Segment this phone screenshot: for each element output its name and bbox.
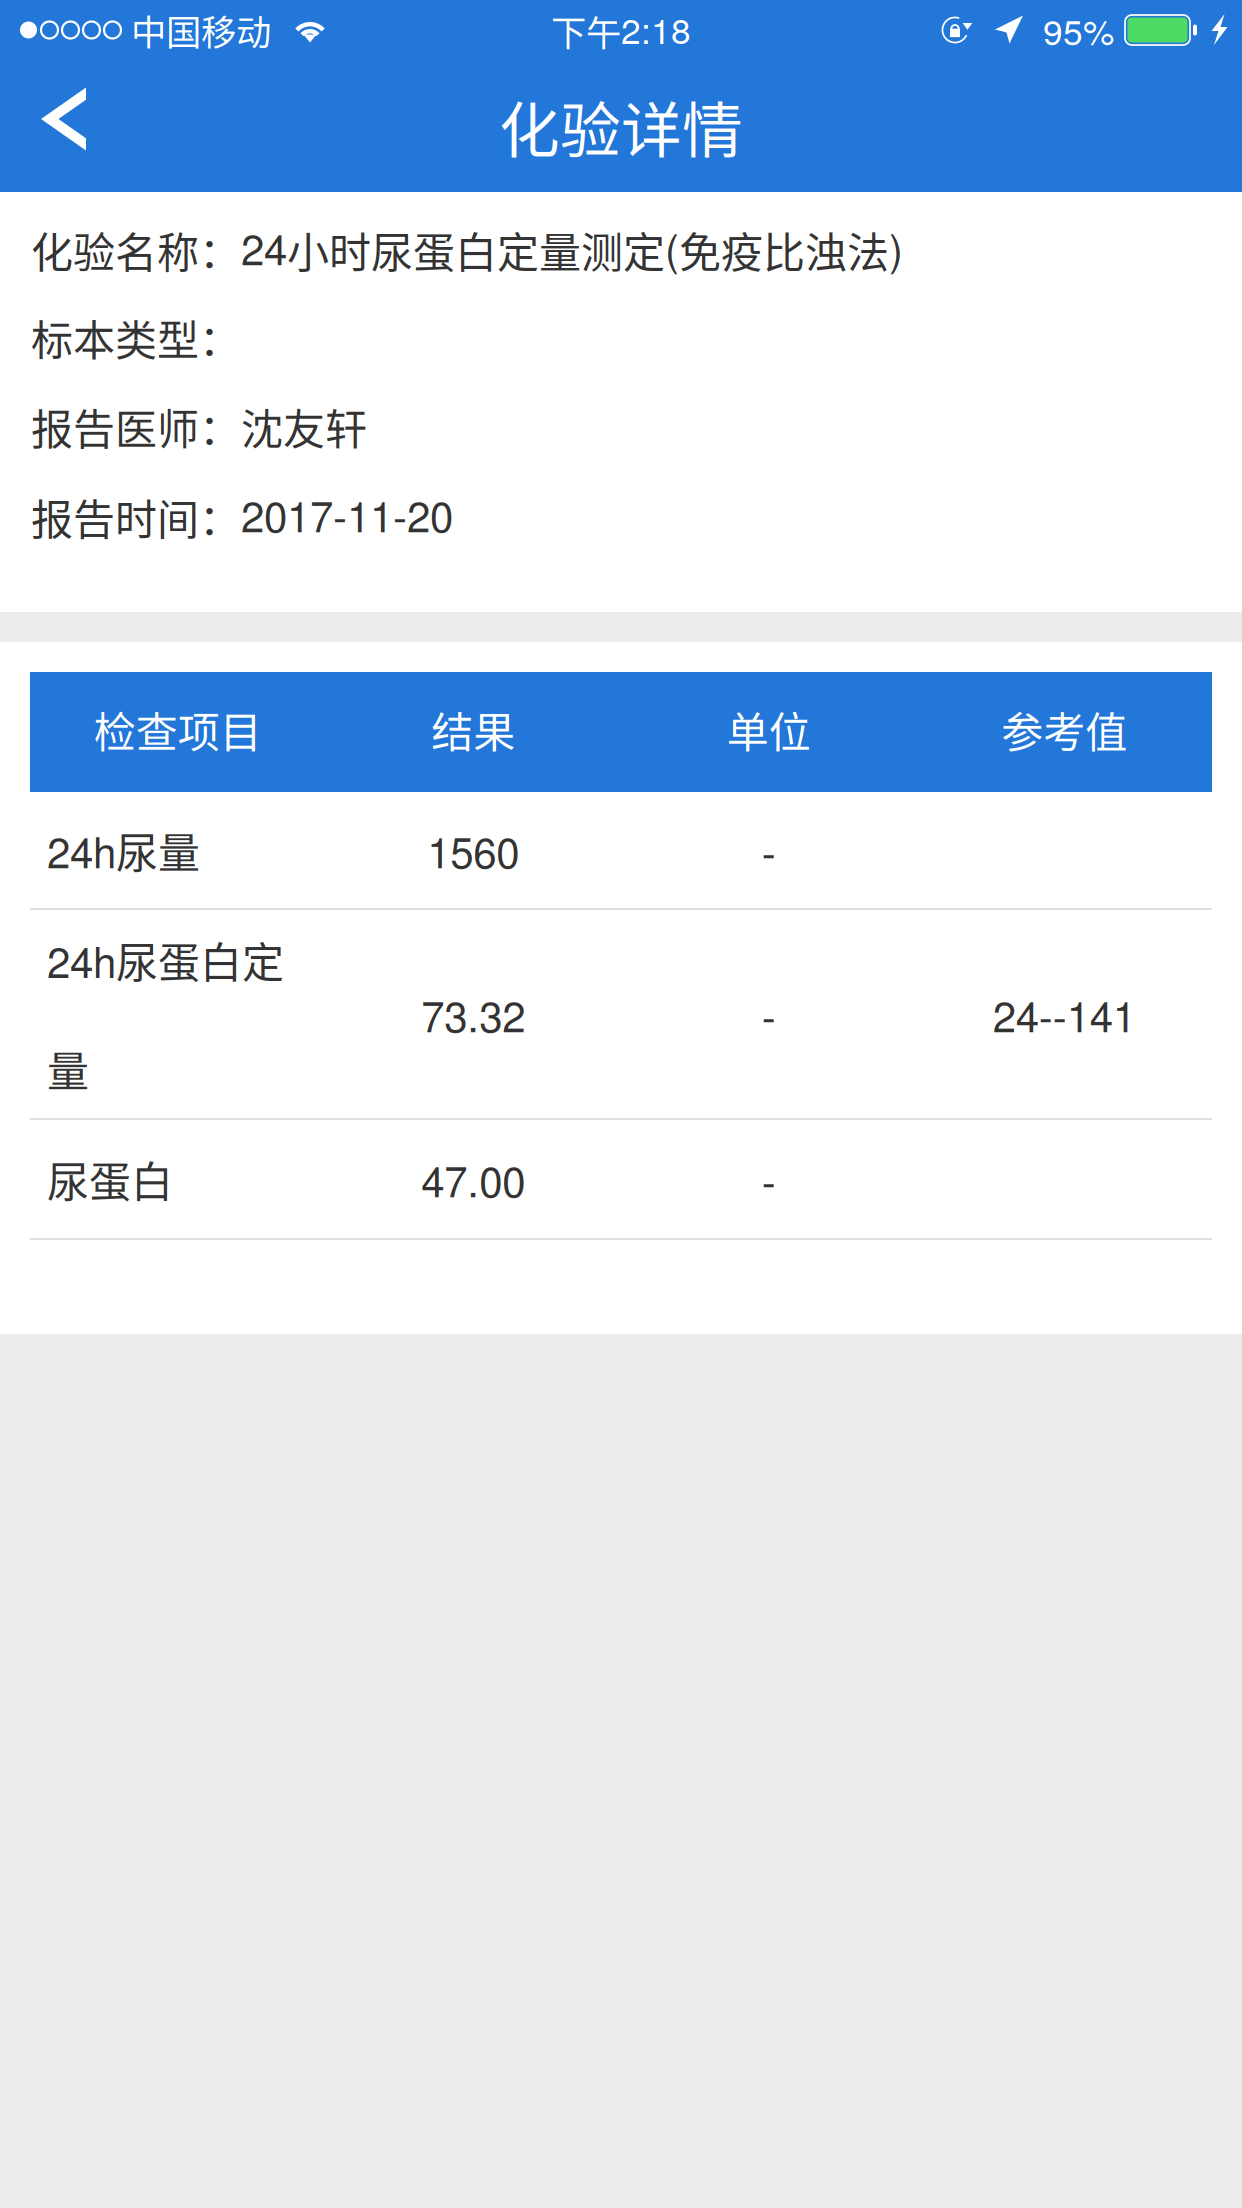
- staticText: -: [762, 984, 776, 1044]
- staticText: 73.32: [421, 984, 525, 1044]
- staticText: -: [762, 1149, 776, 1209]
- staticText: 标本类型：: [31, 307, 241, 368]
- staticText: 单位: [727, 699, 811, 760]
- staticText: 24h尿蛋白定量: [47, 929, 284, 1099]
- staticText: 化验名称：24小时尿蛋白定量测定(免疫比浊法): [31, 217, 903, 280]
- staticText: 95%: [1043, 5, 1114, 55]
- staticText: 下午2:18: [551, 3, 691, 57]
- staticText: 24--141: [993, 984, 1136, 1044]
- staticText: 24h尿量: [47, 820, 200, 880]
- staticText: 报告时间：2017-11-20: [31, 484, 453, 547]
- staticText: 尿蛋白: [47, 1149, 173, 1209]
- staticText: 中国移动: [131, 4, 271, 56]
- staticText: 结果: [431, 699, 515, 760]
- button[interactable]: 返回: [0, 60, 127, 192]
- staticText: 检查项目: [94, 699, 262, 760]
- staticText: 参考值: [1001, 699, 1127, 760]
- staticText: -: [762, 820, 776, 880]
- staticText: 1560: [427, 820, 519, 880]
- staticText: 化验详情: [499, 82, 743, 170]
- staticText: 报告医师：沈友轩: [31, 396, 367, 457]
- staticText: 47.00: [421, 1149, 525, 1209]
